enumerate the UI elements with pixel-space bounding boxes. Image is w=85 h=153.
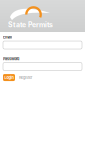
button[interactable]: Login [3, 74, 15, 81]
button[interactable]: Register [15, 75, 32, 80]
staticText: Login [4, 75, 13, 80]
staticText: State Permits [8, 21, 53, 29]
staticText: Password [3, 56, 19, 61]
staticText: Register [19, 75, 32, 80]
staticText: Email [3, 35, 12, 39]
